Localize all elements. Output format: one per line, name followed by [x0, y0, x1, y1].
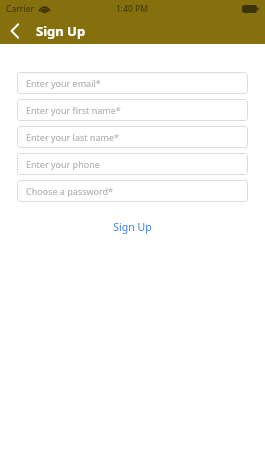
staticText: 1:40 PM — [116, 3, 149, 15]
button[interactable]: Sign Up — [17, 216, 248, 238]
staticText: Choose a password* — [26, 185, 114, 197]
staticText: Sign Up — [36, 22, 86, 40]
staticText: Carrier — [6, 3, 35, 15]
staticText: Enter your last name* — [26, 131, 119, 143]
staticText: Enter your first name* — [26, 104, 121, 116]
staticText: Enter your email* — [26, 77, 101, 89]
button[interactable]: Enter your email* — [17, 72, 248, 94]
button[interactable]: Enter your last name* — [17, 126, 248, 148]
button[interactable]: Back — [0, 18, 30, 44]
button[interactable]: Enter your phone — [17, 153, 248, 175]
button[interactable]: Enter your first name* — [17, 99, 248, 121]
staticText: Enter your phone — [26, 158, 100, 170]
button[interactable]: Choose a password* — [17, 180, 248, 202]
staticText: Sign Up — [113, 220, 152, 234]
